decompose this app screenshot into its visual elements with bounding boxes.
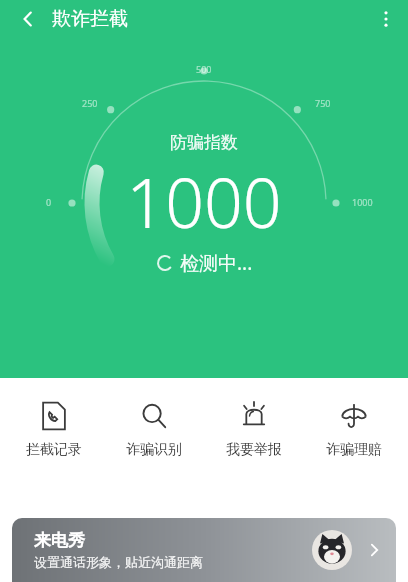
button[interactable]: 诈骗理赔 xyxy=(308,398,400,461)
other: Open 来电秀 xyxy=(358,534,390,566)
staticText: 500 xyxy=(196,63,212,75)
staticText: 防骗指数 xyxy=(170,132,238,153)
button[interactable]: 诈骗识别 xyxy=(108,398,200,461)
staticText: 我要举报 xyxy=(226,441,282,459)
staticText: 诈骗理赔 xyxy=(326,441,382,459)
button[interactable]: 我要举报 xyxy=(208,398,300,461)
staticText: 欺诈拦截 xyxy=(52,7,128,31)
staticText: 检测中... xyxy=(180,250,253,276)
staticText: 1000 xyxy=(126,155,282,248)
staticText: 拦截记录 xyxy=(26,441,82,459)
staticText: 诈骗识别 xyxy=(126,441,182,459)
button[interactable]: 拦截记录 xyxy=(8,398,100,461)
staticText: 来电秀 xyxy=(34,530,85,551)
button[interactable]: 来电秀 xyxy=(12,518,396,582)
staticText: 750 xyxy=(315,97,331,109)
button[interactable]: More options xyxy=(366,0,406,38)
button[interactable]: Back xyxy=(8,0,48,38)
staticText: 0 xyxy=(46,196,52,208)
staticText: 1000 xyxy=(352,196,373,208)
staticText: 250 xyxy=(82,97,98,109)
staticText: 设置通话形象，贴近沟通距离 xyxy=(34,554,203,570)
